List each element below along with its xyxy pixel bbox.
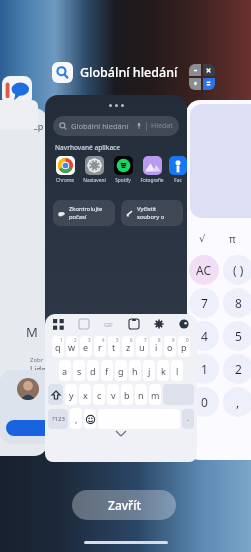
staticText: ?123: [52, 415, 65, 423]
staticText: q: [55, 341, 61, 353]
button[interactable]: ?123: [48, 409, 68, 429]
button[interactable]: l: [171, 360, 183, 381]
staticText: m: [151, 389, 160, 401]
button[interactable]: j: [143, 360, 155, 381]
button[interactable]: f: [101, 360, 113, 381]
button[interactable]: .: [182, 409, 194, 429]
button[interactable]: p: [178, 336, 190, 357]
button[interactable]: 4: [189, 321, 219, 351]
button[interactable]: Vyčistit: [125, 200, 179, 226]
staticText: z: [126, 341, 131, 353]
button[interactable]: Globální hledání: [53, 116, 179, 136]
button[interactable]: n: [135, 384, 147, 405]
button[interactable]: w: [66, 336, 78, 357]
button[interactable]: ,: [223, 387, 251, 417]
staticText: Hledat: [151, 121, 173, 131]
button[interactable]: Globální hledání: [45, 95, 187, 370]
button[interactable]: 1: [189, 354, 219, 384]
staticText: 3: [88, 337, 91, 343]
staticText: 2: [74, 337, 77, 343]
button[interactable]: m: [149, 384, 161, 405]
button[interactable]: x: [79, 384, 91, 405]
button[interactable]: ,: [70, 408, 82, 429]
button[interactable]: s: [73, 360, 85, 381]
button[interactable]: Emoji: [84, 409, 96, 429]
button[interactable]: t: [108, 336, 120, 357]
button[interactable]: y: [65, 384, 77, 405]
staticText: h: [132, 365, 138, 377]
staticText: Zobr: [30, 356, 44, 364]
button[interactable]: Theme: [179, 319, 189, 329]
button[interactable]: q: [52, 336, 64, 357]
button[interactable]: g: [115, 360, 127, 381]
button[interactable]: k: [157, 360, 169, 381]
staticText: Navrhované aplikace: [55, 143, 121, 152]
staticText: .: [187, 414, 189, 424]
staticText: Nastavení: [83, 177, 106, 184]
staticText: ,: [75, 413, 78, 425]
staticText: 2: [235, 361, 242, 377]
button[interactable]: r: [94, 336, 106, 357]
button[interactable]: h: [129, 360, 141, 381]
button[interactable]: d: [87, 360, 99, 381]
staticText: Globální hledání: [80, 64, 178, 81]
staticText: 0: [201, 394, 208, 410]
staticText: o: [167, 341, 173, 353]
button[interactable]: Calculator: [189, 64, 215, 90]
button[interactable]: Fac: [169, 156, 187, 184]
staticText: v: [111, 389, 116, 401]
button[interactable]: i: [150, 336, 162, 357]
staticText: M: [26, 323, 38, 341]
button[interactable]: ( ): [223, 255, 251, 285]
button[interactable]: Zkontrolujte: [57, 200, 111, 226]
button[interactable]: Zavřít: [72, 490, 176, 520]
button[interactable]: AC: [189, 255, 219, 285]
staticText: GIF: [104, 321, 113, 328]
staticText: Spotify: [115, 177, 131, 184]
button[interactable]: 2: [223, 354, 251, 384]
button[interactable]: Přizp: [0, 108, 48, 456]
staticText: Chrome: [56, 177, 74, 184]
button[interactable]: 7: [189, 288, 219, 318]
button[interactable]: b: [121, 384, 133, 405]
staticText: 8: [158, 337, 161, 343]
button[interactable]: Nastavení: [82, 156, 106, 184]
button[interactable]: v: [107, 384, 119, 405]
button[interactable]: Chrome: [53, 156, 77, 184]
staticText: π: [229, 232, 236, 246]
button[interactable]: c: [93, 384, 105, 405]
button[interactable]: o: [164, 336, 176, 357]
button[interactable]: √: [186, 100, 251, 460]
button[interactable]: Stickers: [79, 319, 89, 329]
button[interactable]: z: [122, 336, 134, 357]
button[interactable]: √: [189, 226, 215, 252]
button[interactable]: [6, 420, 48, 436]
button[interactable]: a: [59, 360, 71, 381]
button[interactable]: Clipboard: [129, 319, 139, 329]
button[interactable]: Messages: [2, 76, 32, 106]
staticText: t: [112, 341, 116, 353]
staticText: 4: [102, 337, 105, 343]
button[interactable]: u: [136, 336, 148, 357]
staticText: s: [77, 365, 82, 377]
staticText: x: [83, 389, 88, 401]
staticText: √: [199, 233, 206, 245]
staticText: u: [139, 341, 145, 353]
button[interactable]: Shift: [48, 384, 63, 405]
button[interactable]: Spotify: [111, 156, 135, 184]
button[interactable]: 8: [223, 288, 251, 318]
button[interactable]: 0: [189, 387, 219, 417]
staticText: b: [124, 389, 130, 401]
button[interactable]: e: [80, 336, 92, 357]
button[interactable]: Apps: [53, 319, 64, 330]
staticText: 5: [235, 328, 242, 344]
button[interactable]: Settings: [154, 319, 164, 329]
button[interactable]: Globální hledání: [52, 62, 178, 83]
button[interactable]: 5: [223, 321, 251, 351]
staticText: 4: [201, 328, 208, 344]
button[interactable]: Fotografie: [140, 156, 164, 184]
staticText: l: [176, 365, 179, 377]
button[interactable]: π: [219, 226, 245, 252]
